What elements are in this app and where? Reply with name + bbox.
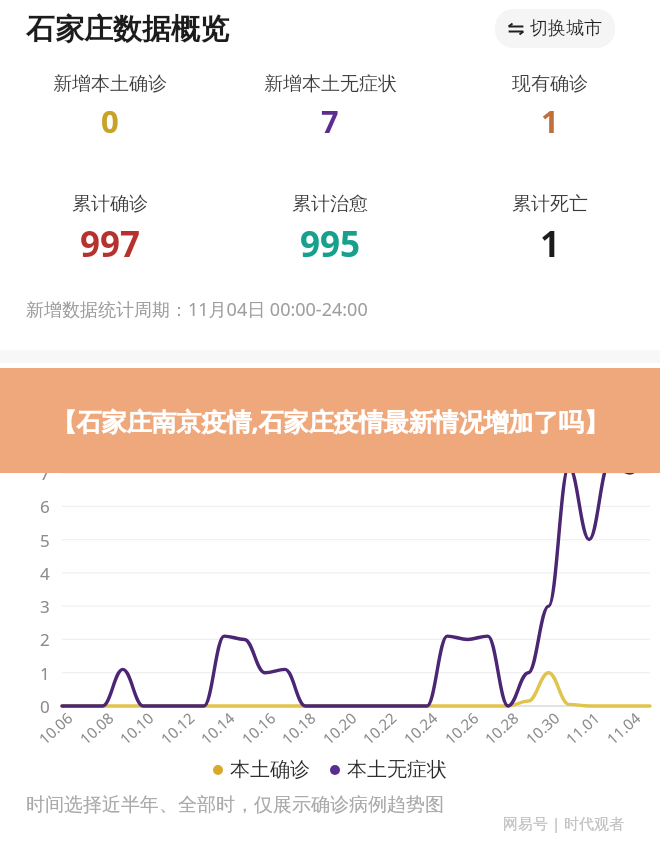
staticText: 10.14 xyxy=(196,707,239,748)
staticText: 1 xyxy=(540,220,561,268)
staticText: 【石家庄南京疫情,石家庄疫情最新情况增加了吗】 xyxy=(51,404,609,438)
staticText: 累计治愈 xyxy=(292,192,368,216)
staticText: 新增数据统计周期：11月04日 00:00-24:00 xyxy=(26,297,368,322)
staticText: 现有确诊 xyxy=(512,72,588,96)
staticText: 2 xyxy=(40,628,50,651)
staticText: 10.16 xyxy=(237,707,280,748)
staticText: 10.18 xyxy=(277,707,320,748)
staticText: 997 xyxy=(80,220,141,268)
staticText: 10.08 xyxy=(75,707,118,748)
staticText: 新增本土无症状 xyxy=(264,72,397,96)
staticText: 10.06 xyxy=(34,707,77,748)
staticText: 6 xyxy=(40,495,50,518)
staticText: 10.28 xyxy=(480,707,523,748)
staticText: 10.20 xyxy=(318,707,361,748)
staticText: 石家庄数据概览 xyxy=(26,11,229,48)
staticText: 10.30 xyxy=(521,707,564,748)
staticText: 切换城市 xyxy=(530,17,602,40)
staticText: 时间选择近半年、全部时，仅展示确诊病例趋势图 xyxy=(26,793,444,817)
staticText: 0 xyxy=(101,100,119,142)
staticText: 11.04 xyxy=(602,707,645,748)
staticText: 11.01 xyxy=(561,707,604,748)
button[interactable]: Switch city xyxy=(495,9,615,48)
staticText: 10.24 xyxy=(399,707,442,748)
staticText: 10.26 xyxy=(440,707,483,748)
staticText: 5 xyxy=(40,529,50,552)
staticText: 新增本土确诊 xyxy=(53,72,167,96)
staticText: 网易号 | 时代观者 xyxy=(503,813,625,833)
staticText: 0 xyxy=(40,695,50,718)
other: Switch city xyxy=(508,21,524,37)
staticText: 4 xyxy=(40,562,50,585)
staticText: 本土无症状 xyxy=(347,757,447,782)
staticText: 3 xyxy=(40,595,50,618)
staticText: 1 xyxy=(40,662,50,685)
staticText: 累计确诊 xyxy=(72,192,148,216)
staticText: 10.10 xyxy=(115,707,158,748)
staticText: 累计死亡 xyxy=(512,192,588,216)
staticText: 995 xyxy=(300,220,361,268)
staticText: 10.12 xyxy=(156,707,199,748)
staticText: 7 xyxy=(321,100,339,142)
staticText: 10.22 xyxy=(358,707,401,748)
staticText: 1 xyxy=(541,100,559,142)
staticText: 本土确诊 xyxy=(230,757,310,782)
staticText: 7 xyxy=(40,462,50,485)
